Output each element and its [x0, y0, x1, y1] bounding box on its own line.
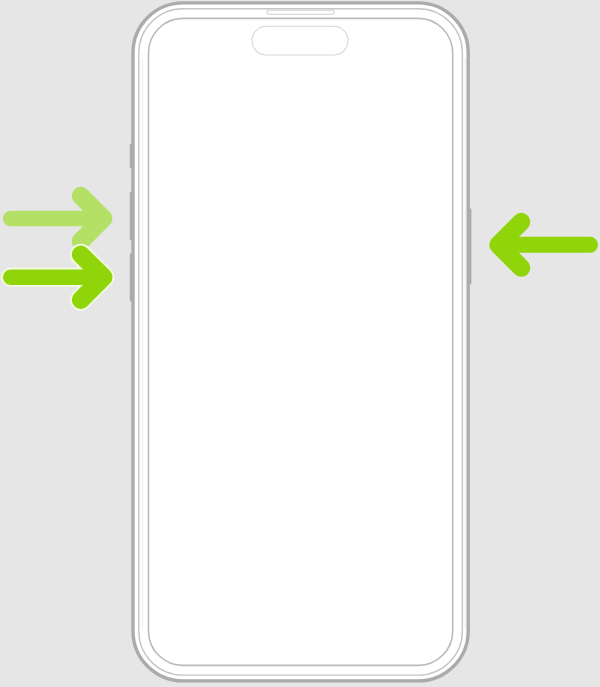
button[interactable]: Diagram of a phone with arrows pointing … — [0, 0, 600, 687]
